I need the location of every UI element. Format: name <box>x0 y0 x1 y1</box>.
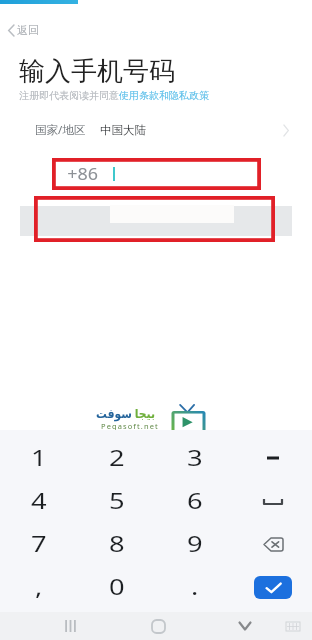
other: Space <box>263 499 283 505</box>
staticText: 4 <box>31 486 48 517</box>
button[interactable]: Keyboard <box>277 612 309 640</box>
staticText: Pegasoft.net <box>101 421 159 431</box>
staticText: 返回 <box>17 23 39 37</box>
button[interactable]: 返回 <box>4 20 43 40</box>
staticText: 1 <box>31 443 48 474</box>
staticText: 0 <box>109 572 126 603</box>
button[interactable]: 3 <box>156 436 234 480</box>
button[interactable]: 6 <box>156 480 234 523</box>
button[interactable]: 4 <box>0 480 78 523</box>
button[interactable]: , <box>0 566 78 609</box>
staticText: 注册即代表阅读并同意使用条款和隐私政策 <box>19 89 209 102</box>
button[interactable]: Backspace <box>234 523 312 566</box>
staticText: . <box>191 572 199 603</box>
staticText: 7 <box>31 529 48 560</box>
staticText: 2 <box>109 443 126 474</box>
button[interactable]: 7 <box>0 523 78 566</box>
staticText: 6 <box>187 486 204 517</box>
staticText: , <box>35 572 43 603</box>
staticText: 5 <box>109 486 126 517</box>
button[interactable]: Confirm <box>234 566 312 609</box>
button[interactable]: Space <box>234 480 312 523</box>
other: Backspace <box>263 537 283 552</box>
button[interactable]: 5 <box>78 480 156 523</box>
button[interactable]: Dash <box>234 436 312 480</box>
other: Confirm <box>254 576 292 599</box>
button[interactable]: 2 <box>78 436 156 480</box>
button[interactable]: 9 <box>156 523 234 566</box>
button[interactable]: Recents <box>52 612 88 640</box>
button[interactable]: +86 <box>52 158 261 190</box>
button[interactable]: 国家/地区 <box>0 118 312 142</box>
button[interactable]: . <box>156 566 234 609</box>
staticText: 3 <box>187 443 204 474</box>
button[interactable]: 1 <box>0 436 78 480</box>
staticText: بيجا سوفت <box>96 405 155 421</box>
other: Dash <box>267 456 279 460</box>
staticText: 9 <box>187 529 204 560</box>
staticText: 8 <box>109 529 126 560</box>
staticText: 国家/地区 <box>35 122 86 138</box>
staticText: +86 <box>67 163 99 185</box>
button[interactable]: 8 <box>78 523 156 566</box>
button[interactable]: 0 <box>78 566 156 609</box>
staticText: 中国大陆 <box>100 123 146 137</box>
button[interactable]: Hide keyboard <box>228 612 262 640</box>
button[interactable]: Home <box>140 612 176 640</box>
staticText: 输入手机号码 <box>19 55 175 88</box>
